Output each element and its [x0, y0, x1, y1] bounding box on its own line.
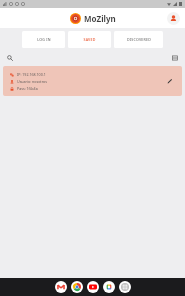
- staticText: MoZilyn: [84, 13, 116, 24]
- button[interactable]: Sort: [170, 53, 180, 63]
- button[interactable]: Search: [5, 53, 15, 63]
- staticText: DISCOVERED: [127, 37, 151, 42]
- staticText: LOG IN: [37, 37, 51, 42]
- button[interactable]: Gmail: [55, 281, 67, 293]
- button[interactable]: All apps: [119, 281, 131, 293]
- staticText: Pass: 1f4c4a: [17, 86, 38, 91]
- staticText: SAVED: [83, 37, 96, 42]
- staticText: Usuario: nosotros: [17, 79, 47, 84]
- button[interactable]: Edit: [165, 76, 175, 86]
- button[interactable]: Chrome: [71, 281, 83, 293]
- button[interactable]: DISCOVERED: [114, 31, 163, 48]
- button[interactable]: Account: [167, 12, 180, 25]
- button[interactable]: SAVED: [68, 31, 111, 48]
- button[interactable]: Photos: [103, 281, 115, 293]
- button[interactable]: YouTube: [87, 281, 99, 293]
- button[interactable]: LOG IN: [22, 31, 65, 48]
- button[interactable]: IP: 192.168.100.1: [3, 66, 182, 96]
- staticText: IP: 192.168.100.1: [17, 72, 46, 77]
